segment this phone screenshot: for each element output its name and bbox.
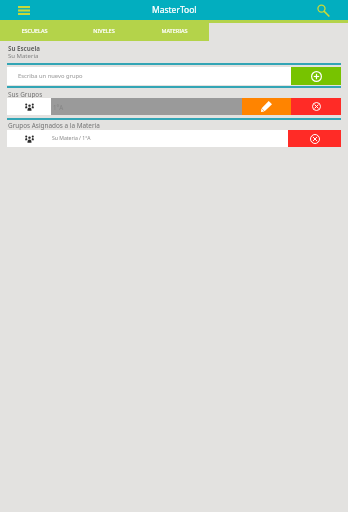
staticText: Su Materia / 1°A	[52, 135, 91, 142]
button[interactable]: MATERIAS	[139, 20, 209, 41]
staticText: ESCUELAS	[21, 27, 48, 34]
button[interactable]: Agregar grupo	[291, 67, 341, 85]
staticText: MasterTool	[152, 4, 197, 16]
button[interactable]: ESCUELAS	[0, 20, 69, 41]
staticText: Grupos Asignados a la Materia	[8, 121, 100, 130]
staticText: Sus Grupos	[8, 90, 43, 99]
staticText: NIVELES	[93, 27, 115, 34]
staticText: 1°A	[53, 103, 64, 111]
button[interactable]: NIVELES	[69, 20, 139, 41]
staticText: Su Materia	[8, 52, 39, 60]
button[interactable]: Escriba un nuevo grupo	[7, 67, 291, 85]
staticText: MATERIAS	[161, 27, 188, 34]
button[interactable]: Menu	[15, 2, 32, 19]
staticText: Escriba un nuevo grupo	[18, 72, 83, 80]
button[interactable]: Editar grupo	[242, 98, 291, 115]
button[interactable]: Search	[315, 2, 332, 19]
staticText: Su Escuela	[8, 44, 41, 52]
button[interactable]: Su Materia / 1°A	[52, 130, 288, 147]
button[interactable]: Eliminar grupo	[291, 98, 341, 115]
button[interactable]: Eliminar grupo asignado	[288, 130, 341, 147]
